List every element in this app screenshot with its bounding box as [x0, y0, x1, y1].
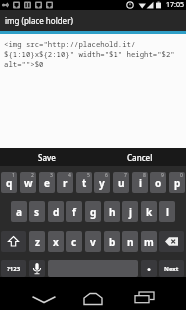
staticText: c	[71, 235, 77, 249]
button[interactable]: i	[132, 172, 148, 193]
button[interactable]: q	[1, 172, 17, 193]
staticText: s	[34, 205, 40, 219]
staticText: 4	[68, 172, 71, 179]
button[interactable]: t	[76, 172, 92, 193]
button[interactable]: w	[20, 172, 36, 193]
staticText: 6	[105, 172, 108, 179]
button[interactable]: h	[104, 201, 120, 222]
staticText: g	[90, 205, 97, 219]
button[interactable]: p	[169, 172, 185, 193]
button[interactable]: a	[11, 201, 27, 222]
staticText: alt="">$0	[4, 59, 44, 69]
staticText: o	[155, 176, 162, 190]
button[interactable]: c	[66, 231, 82, 252]
staticText: a	[16, 205, 22, 219]
button[interactable]: Cancel	[93, 148, 186, 166]
button[interactable]: j	[122, 201, 138, 222]
button[interactable]: img (place holder)	[0, 10, 186, 31]
staticText: z	[35, 235, 40, 249]
staticText: img (place holder)	[5, 15, 73, 26]
button[interactable]: Save	[0, 148, 93, 166]
staticText: ${1:10}x${2:10}" width="$1" height="$2"	[4, 49, 175, 59]
staticText: y	[99, 176, 105, 190]
button[interactable]: z	[29, 231, 45, 252]
staticText: r	[63, 176, 68, 190]
button[interactable]: y	[94, 172, 110, 193]
button[interactable]	[29, 260, 45, 277]
staticText: l	[166, 205, 169, 219]
button[interactable]: e	[39, 172, 55, 193]
button[interactable]: g	[85, 201, 101, 222]
staticText: ?123	[7, 265, 21, 273]
staticText: u	[118, 176, 125, 190]
button[interactable]: k	[141, 201, 157, 222]
staticText: d	[53, 205, 60, 219]
staticText: m	[144, 235, 154, 249]
button[interactable]	[141, 260, 157, 277]
button[interactable]: r	[57, 172, 73, 193]
button[interactable]: x	[48, 231, 64, 252]
staticText: 3	[50, 172, 53, 179]
staticText: 5	[87, 172, 90, 179]
staticText: 17:05	[166, 0, 184, 10]
button[interactable]: o	[150, 172, 166, 193]
button[interactable]	[83, 291, 105, 309]
staticText: b	[109, 235, 116, 249]
button[interactable]: ?123	[1, 260, 26, 277]
staticText: v	[90, 235, 96, 249]
staticText: Cancel	[127, 152, 153, 163]
staticText: <img src="http://placehold.it/	[4, 39, 136, 49]
staticText: w	[24, 176, 33, 190]
staticText: x	[53, 235, 59, 249]
staticText: 2	[31, 172, 34, 179]
staticText: e	[44, 176, 50, 190]
button[interactable]: n	[122, 231, 138, 252]
staticText: k	[146, 205, 153, 219]
button[interactable]: f	[66, 201, 82, 222]
button[interactable]	[133, 290, 157, 308]
button[interactable]	[30, 290, 60, 308]
staticText: h	[109, 205, 116, 219]
staticText: Save	[38, 152, 56, 163]
staticText: i	[139, 176, 142, 190]
button[interactable]: b	[104, 231, 120, 252]
staticText: Next	[164, 265, 179, 273]
button[interactable]: u	[113, 172, 129, 193]
staticText: 0	[180, 172, 183, 179]
button[interactable]: s	[29, 201, 45, 222]
staticText: t	[82, 176, 87, 190]
staticText: f	[72, 205, 76, 219]
button[interactable]: l	[159, 201, 175, 222]
staticText: j	[129, 205, 132, 219]
button[interactable]: m	[141, 231, 157, 252]
button[interactable]: Next	[159, 260, 184, 277]
button[interactable]	[1, 231, 26, 252]
staticText: 9	[161, 172, 164, 179]
staticText: 7	[124, 172, 127, 179]
button[interactable]: d	[48, 201, 64, 222]
staticText: q	[6, 176, 13, 190]
staticText: p	[174, 176, 181, 190]
button[interactable]: v	[85, 231, 101, 252]
staticText: n	[127, 235, 134, 249]
staticText: 1	[12, 172, 15, 179]
staticText: 8	[143, 172, 146, 179]
button[interactable]	[159, 231, 184, 252]
